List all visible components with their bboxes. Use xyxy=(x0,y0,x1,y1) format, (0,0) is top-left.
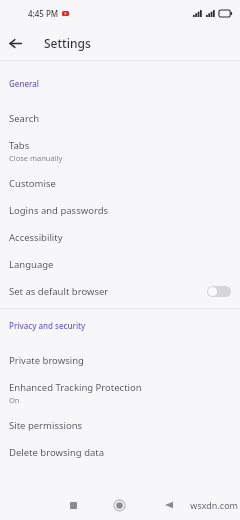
staticText: Accessibility xyxy=(9,231,63,244)
staticText: Settings xyxy=(44,35,91,51)
button[interactable]: Back xyxy=(158,494,180,516)
staticText: Tabs xyxy=(9,139,30,152)
staticText: 4:45 PM xyxy=(28,8,59,19)
button[interactable]: Private browsing xyxy=(0,347,240,374)
staticText: On xyxy=(9,395,20,405)
staticText: Customise xyxy=(9,177,56,190)
button[interactable]: Home xyxy=(108,494,130,516)
other: Set as default browser toggle xyxy=(207,286,231,297)
button[interactable]: Customise xyxy=(0,170,240,197)
staticText: Logins and passwords xyxy=(9,204,109,217)
staticText: General xyxy=(9,78,39,89)
staticText: Private browsing xyxy=(9,354,84,367)
button[interactable]: Delete browsing data xyxy=(0,439,240,466)
staticText: Site permissions xyxy=(9,419,83,432)
button[interactable]: Language xyxy=(0,251,240,278)
staticText: Close manually xyxy=(9,153,63,163)
button[interactable]: Tabs xyxy=(0,132,240,170)
button[interactable]: Recent apps xyxy=(62,494,84,516)
button[interactable]: Search xyxy=(0,105,240,132)
button[interactable]: Back xyxy=(0,28,30,58)
staticText: Set as default browser xyxy=(9,285,109,298)
button[interactable]: Accessibility xyxy=(0,224,240,251)
staticText: Enhanced Tracking Protection xyxy=(9,381,142,394)
staticText: wsxdn.com xyxy=(190,499,238,511)
staticText: Privacy and security xyxy=(9,320,86,331)
button[interactable]: Logins and passwords xyxy=(0,197,240,224)
button[interactable]: Site permissions xyxy=(0,412,240,439)
staticText: Delete browsing data xyxy=(9,446,105,459)
staticText: Search xyxy=(9,112,40,125)
button[interactable]: Enhanced Tracking Protection xyxy=(0,374,240,412)
staticText: Language xyxy=(9,258,54,271)
button[interactable]: Set as default browser xyxy=(0,278,240,305)
